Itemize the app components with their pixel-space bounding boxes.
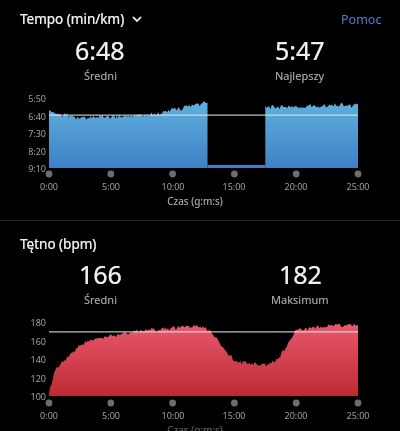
staticText: 10:00 (155, 409, 191, 421)
button[interactable]: Pomoc (337, 9, 386, 30)
staticText: 9:10 (20, 162, 46, 174)
staticText: 8:20 (20, 145, 46, 157)
staticText: 5:47 (275, 33, 325, 67)
staticText: 120 (20, 372, 46, 384)
button[interactable]: Tempo (min/km) (20, 8, 143, 30)
staticText: Średni (84, 68, 117, 83)
staticText: 160 (20, 335, 46, 347)
staticText: 182 (279, 257, 322, 291)
staticText: 100 (20, 390, 46, 402)
staticText: 6:48 (75, 33, 125, 67)
staticText: 7:30 (20, 127, 46, 139)
staticText: 5:50 (20, 92, 46, 104)
staticText: Pomoc (341, 11, 382, 28)
staticText: 6:40 (20, 110, 46, 122)
staticText: 180 (20, 316, 46, 328)
staticText: Tętno (bpm) (20, 235, 97, 253)
staticText: 20:00 (278, 180, 314, 192)
staticText: 0:00 (31, 409, 67, 421)
button[interactable]: Tętno (bpm) (20, 233, 97, 255)
staticText: 166 (79, 257, 122, 291)
staticText: 20:00 (278, 409, 314, 421)
staticText: 25:00 (340, 180, 376, 192)
staticText: 5:00 (93, 409, 129, 421)
staticText: 25:00 (340, 409, 376, 421)
staticText: 140 (20, 353, 46, 365)
staticText: 0:00 (31, 180, 67, 192)
staticText: Średni (84, 292, 117, 307)
staticText: 10:00 (155, 180, 191, 192)
staticText: 15:00 (216, 180, 252, 192)
staticText: 15:00 (216, 409, 252, 421)
staticText: Czas (g:m:s) (0, 423, 390, 431)
staticText: Tempo (min/km) (20, 10, 125, 28)
staticText: Maksimum (271, 292, 329, 307)
staticText: Najlepszy (275, 68, 325, 83)
staticText: 5:00 (93, 180, 129, 192)
staticText: Czas (g:m:s) (0, 194, 390, 208)
